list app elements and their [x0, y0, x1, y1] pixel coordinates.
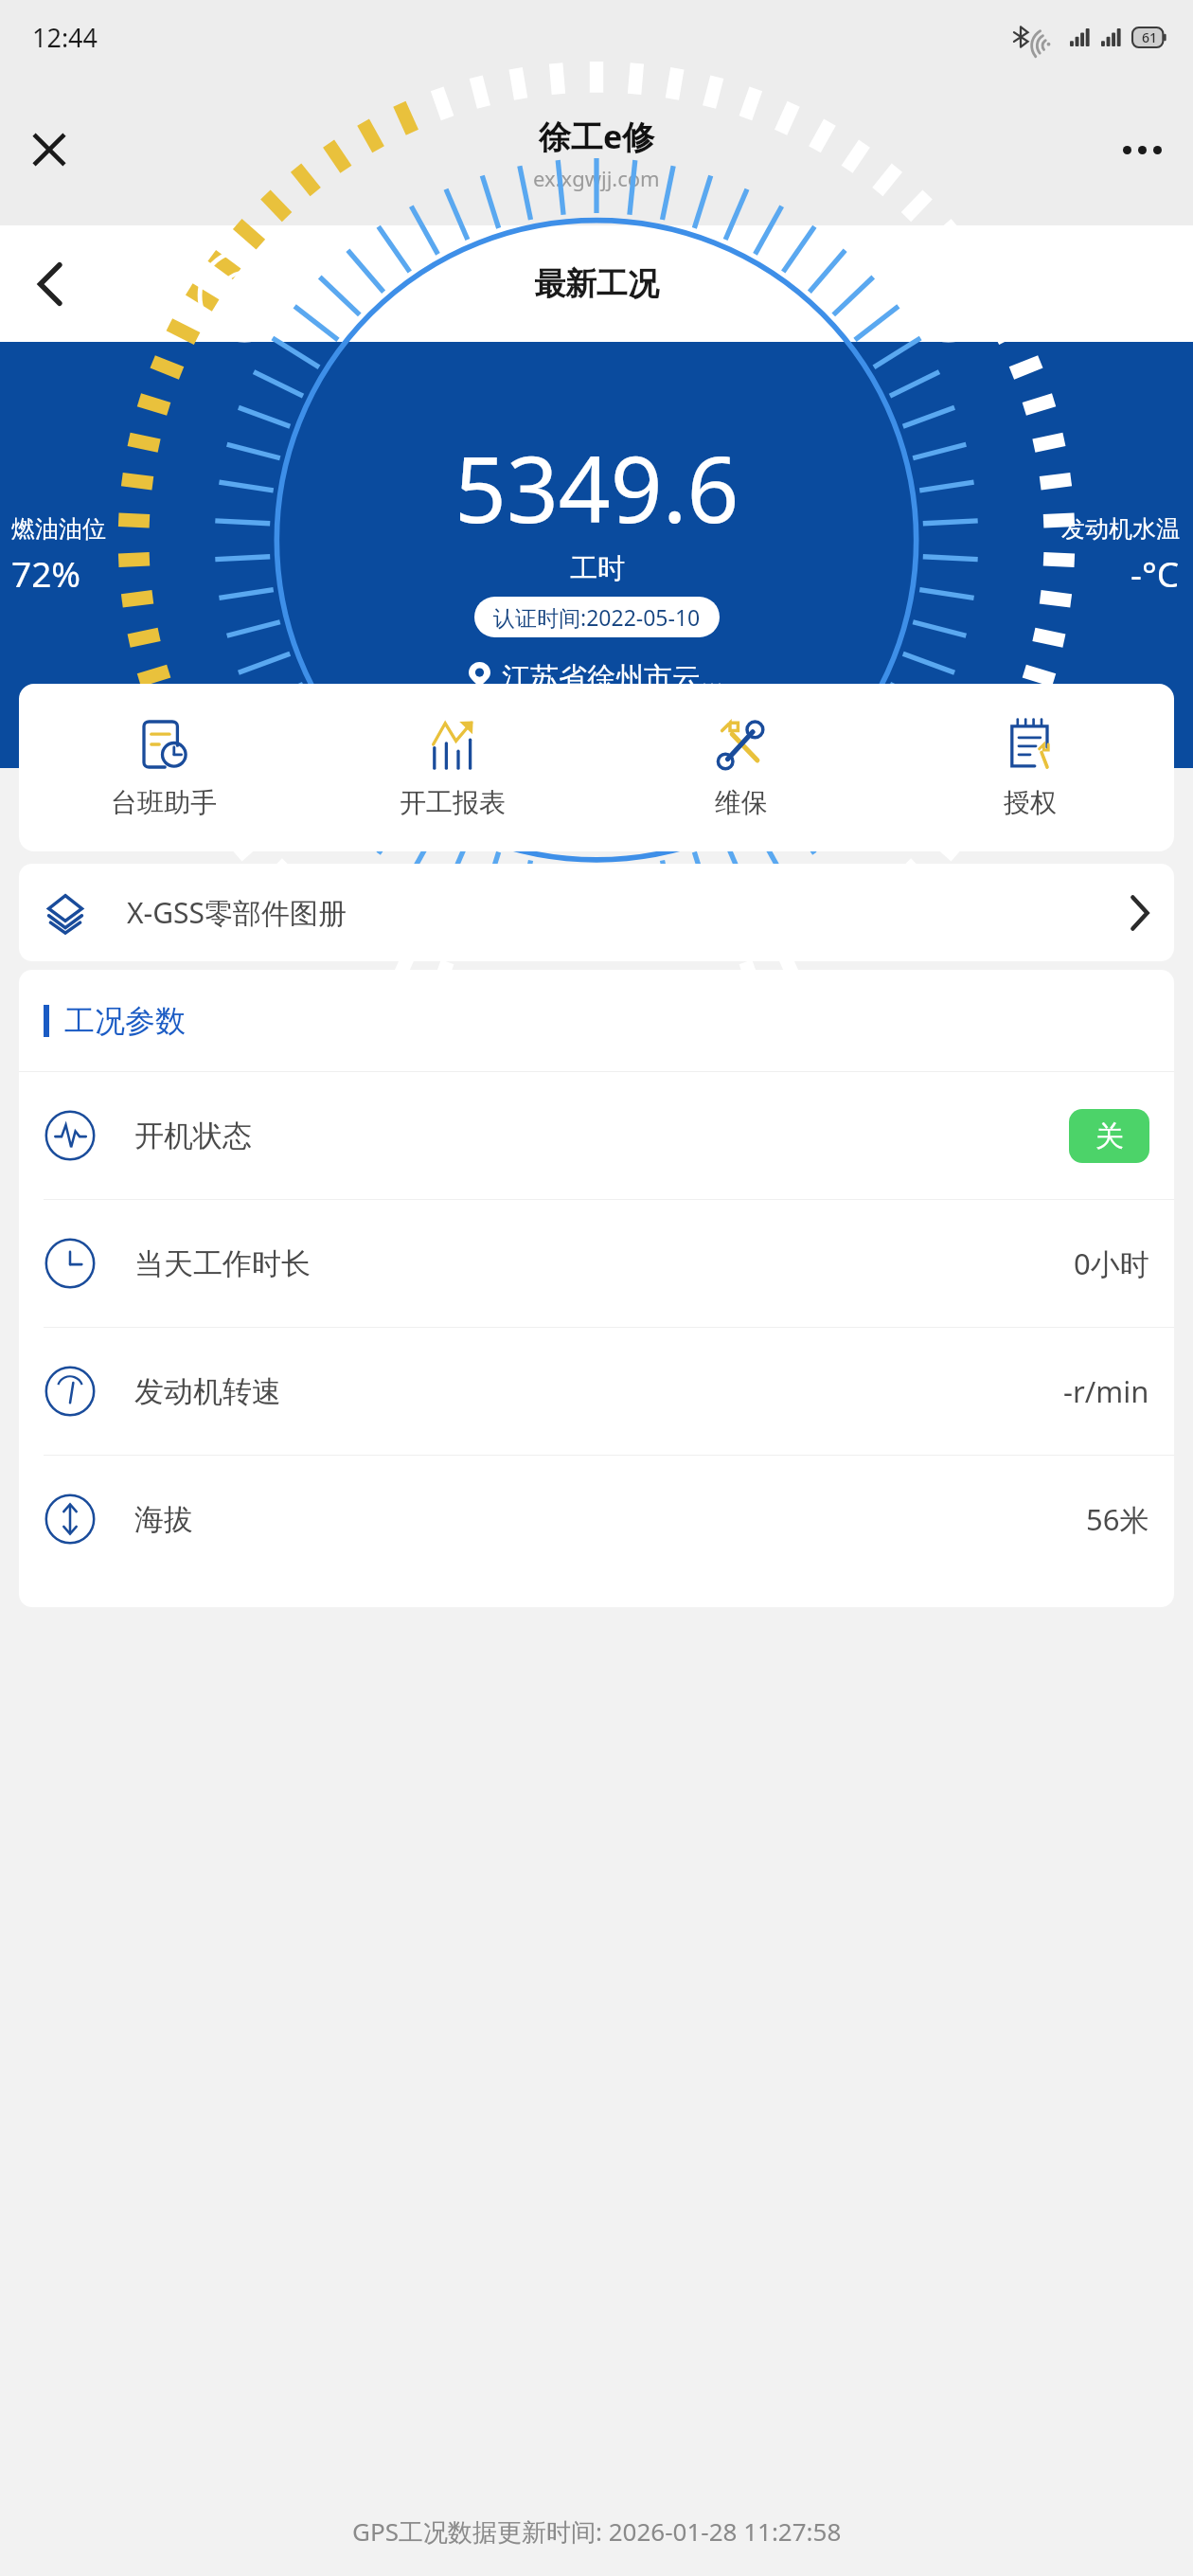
staticText: 发动机水温 — [1061, 514, 1180, 544]
staticText: 海拔 — [134, 1501, 193, 1538]
button[interactable]: 台班助手 — [19, 712, 308, 823]
staticText: 徐工e修 — [539, 115, 655, 158]
button[interactable]: Back — [15, 249, 85, 319]
button[interactable]: 当天工作时长 — [19, 1200, 1174, 1327]
staticText: 授权 — [1004, 786, 1057, 819]
staticText: 燃油油位 — [11, 514, 106, 544]
staticText: X-GSS零部件图册 — [127, 893, 347, 932]
button[interactable]: 开机状态 — [19, 1072, 1174, 1199]
staticText: 工况参数 — [64, 1002, 186, 1040]
staticText: 江苏省徐州市云... — [502, 657, 724, 696]
staticText: 发动机转速 — [134, 1373, 281, 1410]
staticText: ex.xgwjj.com — [533, 164, 660, 192]
staticText: 0小时 — [1074, 1243, 1149, 1283]
button[interactable]: 发动机转速 — [19, 1328, 1174, 1455]
staticText: 维保 — [715, 786, 768, 819]
staticText: 开工报表 — [400, 786, 506, 819]
staticText: 最新工况 — [534, 264, 659, 304]
staticText: 56米 — [1086, 1499, 1149, 1539]
staticText: 开机状态 — [134, 1118, 252, 1154]
button[interactable]: 海拔 — [19, 1456, 1174, 1583]
button[interactable]: Close — [15, 116, 83, 184]
staticText: GPS工况数据更新时间: 2026-01-28 11:27:58 — [352, 2514, 842, 2549]
staticText: -°C — [1131, 549, 1180, 597]
staticText: -r/min — [1063, 1371, 1149, 1411]
staticText: 当天工作时长 — [134, 1245, 311, 1282]
staticText: 12:44 — [32, 20, 98, 55]
button[interactable]: More options — [1108, 116, 1176, 184]
staticText: 认证时间:2022-05-10 — [493, 602, 701, 632]
staticText: 关 — [1095, 1118, 1124, 1154]
staticText: 5349.6 — [454, 425, 739, 549]
button[interactable]: X-GSS零部件图册 — [19, 864, 1174, 961]
staticText: 工时 — [570, 551, 625, 586]
staticText: 台班助手 — [111, 786, 217, 819]
button[interactable]: 授权 — [885, 712, 1174, 823]
button[interactable]: 维保 — [596, 712, 885, 823]
button[interactable]: 开工报表 — [308, 712, 596, 823]
staticText: 61 — [1142, 28, 1158, 46]
staticText: 72% — [11, 549, 81, 597]
